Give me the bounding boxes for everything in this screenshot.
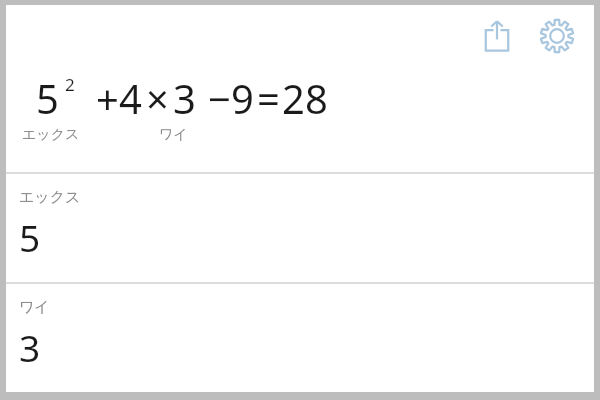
button[interactable]: Share: [474, 13, 520, 59]
staticText: 5: [36, 71, 59, 125]
staticText: 4: [119, 71, 142, 125]
staticText: ×: [146, 71, 169, 125]
staticText: 3: [173, 71, 196, 125]
staticText: エックス: [19, 188, 81, 207]
staticText: +: [96, 71, 119, 125]
button[interactable]: ワイ: [6, 284, 594, 392]
staticText: ワイ: [19, 298, 50, 317]
staticText: 28: [282, 71, 328, 125]
staticText: 5: [19, 212, 41, 262]
staticText: =: [257, 71, 280, 125]
staticText: ワイ: [159, 126, 188, 144]
staticText: −: [208, 71, 231, 125]
button[interactable]: Settings: [534, 13, 580, 59]
button[interactable]: エックス: [6, 174, 594, 282]
staticText: 2: [65, 73, 75, 96]
staticText: 3: [19, 322, 41, 372]
staticText: 9: [231, 71, 254, 125]
staticText: エックス: [22, 126, 80, 144]
button[interactable]: 5: [6, 67, 594, 172]
